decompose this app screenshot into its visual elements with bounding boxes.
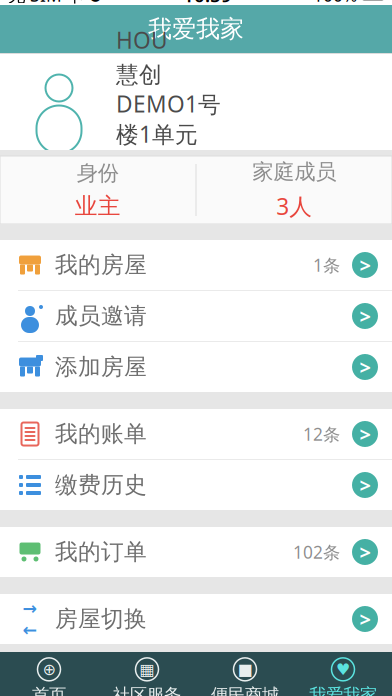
staticText: 我爱我家 <box>148 14 244 44</box>
staticText: 无 SIM 卡 <box>8 0 84 6</box>
staticText: ■ <box>237 660 252 678</box>
staticText: 身份 <box>77 160 119 186</box>
staticText: > <box>359 421 370 447</box>
button[interactable]: → <box>0 594 392 644</box>
staticText: 100% <box>313 0 357 6</box>
staticText: 房屋切换 <box>55 605 147 633</box>
staticText: > <box>359 539 370 565</box>
button[interactable]: 添加房屋 <box>0 342 392 392</box>
staticText: ● <box>84 0 102 3</box>
staticText: 首页 <box>32 684 66 696</box>
staticText: 12条 <box>303 422 340 445</box>
staticText: ← <box>22 620 37 640</box>
staticText: 1条 <box>313 253 340 276</box>
button[interactable]: ■ <box>196 655 294 696</box>
staticText: > <box>359 354 370 380</box>
button[interactable]: ♥ <box>294 655 392 696</box>
staticText: 我的订单 <box>55 538 147 566</box>
staticText: 10:59 <box>183 0 232 7</box>
staticText: ♥ <box>336 660 350 678</box>
button[interactable]: 我的账单 <box>0 409 392 460</box>
staticText: ⊕ <box>42 660 55 678</box>
staticText: 102条 <box>293 540 340 563</box>
staticText: 业主 <box>75 192 121 220</box>
staticText: 3人 <box>276 191 312 221</box>
staticText: > <box>359 472 370 498</box>
staticText: > <box>359 252 370 278</box>
button[interactable]: ▦ <box>98 655 196 696</box>
staticText: 缴费历史 <box>55 471 147 499</box>
staticText: HOU <box>116 25 168 55</box>
staticText: ▦ <box>139 660 154 678</box>
staticText: 社区服务 <box>113 684 181 696</box>
button[interactable]: 缴费历史 <box>0 460 392 510</box>
staticText: 添加房屋 <box>55 353 147 381</box>
staticText: 我的账单 <box>55 420 147 448</box>
button[interactable]: 成员邀请 <box>0 291 392 342</box>
staticText: 便民商城 <box>211 684 279 696</box>
staticText: > <box>359 303 370 329</box>
staticText: → <box>22 598 37 618</box>
button[interactable]: ⊕ <box>0 655 98 696</box>
staticText: 我的房屋 <box>55 251 147 279</box>
button[interactable]: 我的房屋 <box>0 240 392 291</box>
button[interactable]: 我的订单 <box>0 527 392 577</box>
staticText: 家庭成员 <box>252 159 336 185</box>
staticText: 成员邀请 <box>55 302 147 330</box>
staticText: > <box>359 606 370 632</box>
staticText: 慧创DEMO1号楼1单元103 <box>116 61 221 179</box>
staticText: 我爱我家 <box>309 684 377 696</box>
